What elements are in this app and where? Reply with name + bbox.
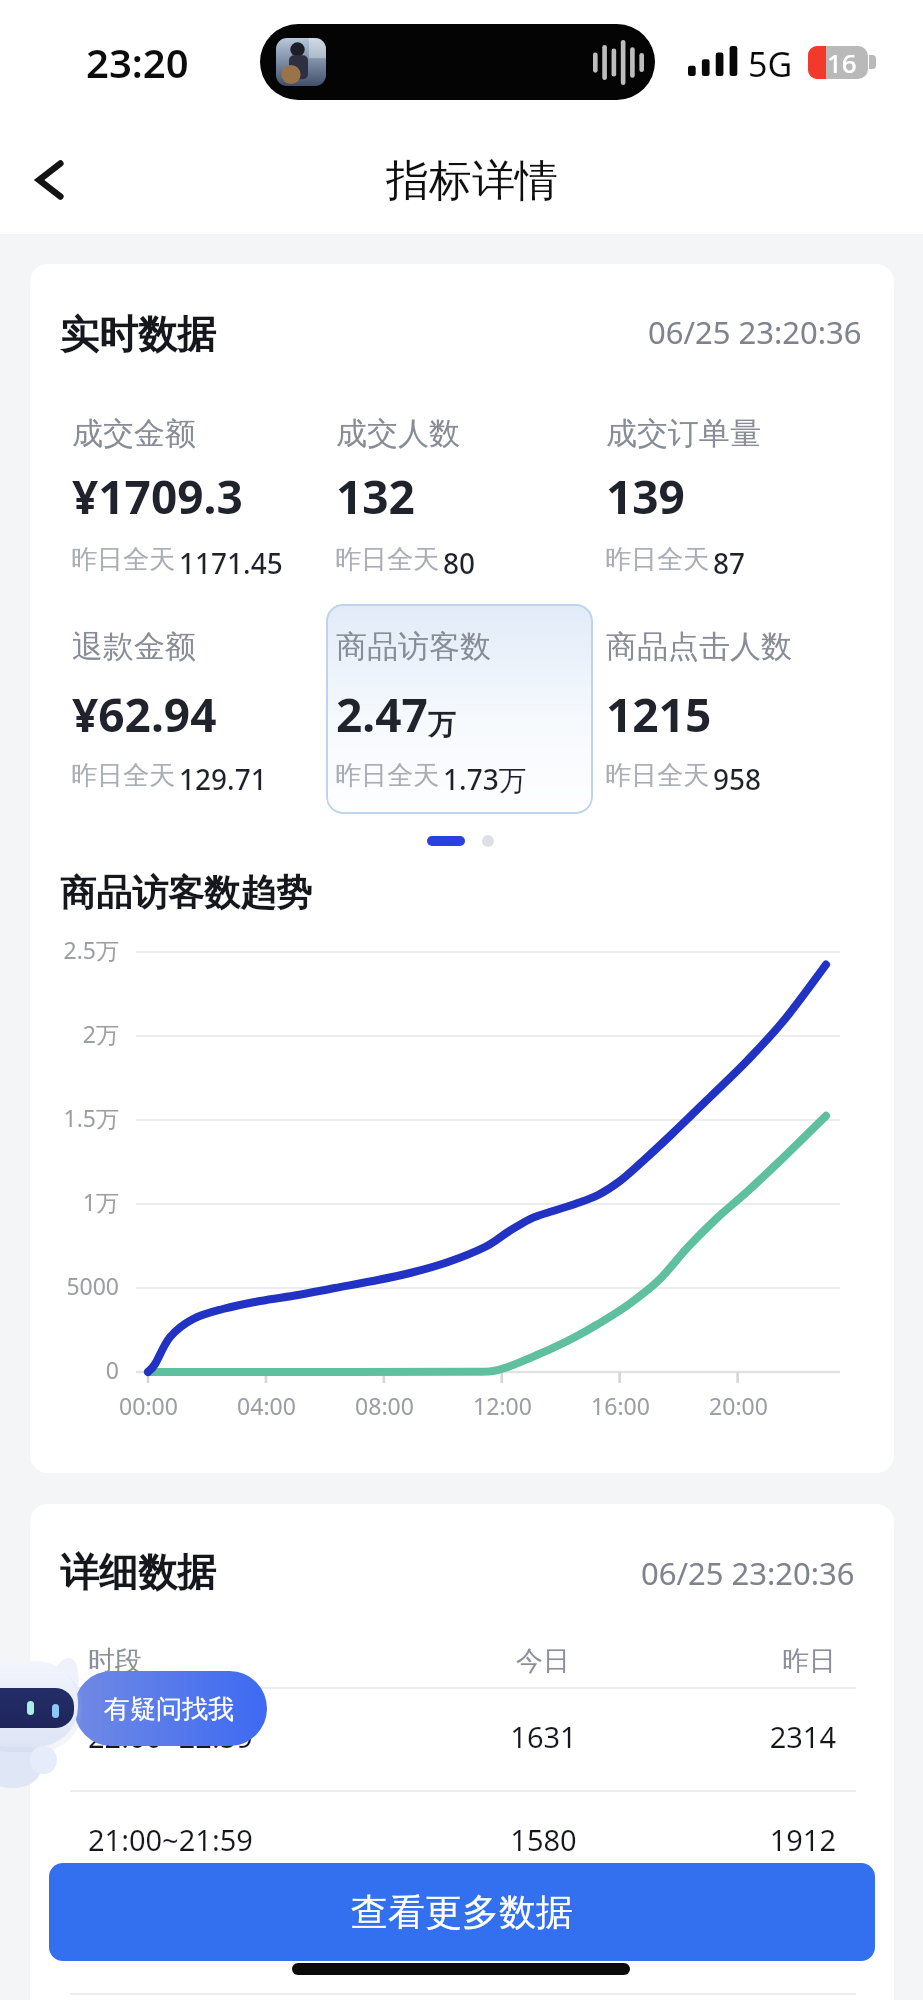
staticText: 2314 bbox=[769, 1717, 836, 1756]
staticText: 指标详情 bbox=[386, 154, 558, 208]
staticText: 139 bbox=[606, 465, 685, 528]
staticText: 实时数据 bbox=[60, 310, 216, 359]
staticText: 2万 bbox=[82, 1018, 119, 1049]
staticText: 昨日全天 bbox=[335, 543, 439, 576]
staticText: 06/25 23:20:36 bbox=[641, 1552, 855, 1594]
staticText: 查看更多数据 bbox=[351, 1889, 573, 1936]
staticText: 16 bbox=[827, 45, 857, 78]
button[interactable] bbox=[326, 604, 593, 814]
staticText: 2.5万 bbox=[63, 934, 119, 965]
staticText: 2.47 bbox=[336, 683, 428, 746]
staticText: 80 bbox=[443, 544, 476, 582]
button[interactable] bbox=[57, 400, 324, 610]
staticText: 5000 bbox=[66, 1270, 119, 1301]
staticText: 1446 bbox=[510, 1923, 577, 1962]
staticText: 22:00~22:59 bbox=[88, 1717, 253, 1756]
button[interactable] bbox=[57, 613, 324, 823]
staticText: 5G bbox=[748, 41, 793, 87]
button[interactable]: Back bbox=[16, 145, 86, 215]
staticText: 成交订单量 bbox=[606, 414, 761, 453]
staticText: 昨日 bbox=[782, 1644, 836, 1678]
staticText: 1万 bbox=[82, 1186, 119, 1217]
button[interactable]: AI assistant bbox=[0, 1640, 90, 1790]
button[interactable]: 查看更多数据 bbox=[49, 1863, 875, 1961]
staticText: 06/25 23:20:36 bbox=[648, 311, 862, 353]
staticText: 商品点击人数 bbox=[606, 627, 792, 666]
staticText: 退款金额 bbox=[72, 627, 196, 666]
button[interactable] bbox=[591, 613, 858, 823]
staticText: 商品访客数趋势 bbox=[60, 870, 312, 915]
staticText: 成交人数 bbox=[336, 414, 460, 453]
staticText: 00:00 bbox=[119, 1390, 178, 1421]
button[interactable] bbox=[591, 400, 858, 610]
staticText: 0 bbox=[105, 1354, 119, 1385]
staticText: 昨日全天 bbox=[335, 759, 439, 792]
staticText: 时段 bbox=[88, 1644, 142, 1678]
staticText: 12:00 bbox=[473, 1390, 532, 1421]
staticText: 129.71 bbox=[179, 760, 267, 798]
staticText: 1.5万 bbox=[63, 1102, 119, 1133]
staticText: 87 bbox=[713, 544, 746, 582]
staticText: 08:00 bbox=[355, 1390, 414, 1421]
staticText: 1580 bbox=[510, 1820, 577, 1859]
staticText: 昨日全天 bbox=[605, 759, 709, 792]
staticText: 有疑问找我 bbox=[104, 1693, 234, 1726]
staticText: 详细数据 bbox=[60, 1548, 216, 1597]
staticText: ¥62.94 bbox=[72, 683, 217, 746]
staticText: 1171.45 bbox=[179, 544, 283, 582]
staticText: 1.73万 bbox=[443, 760, 527, 798]
staticText: 1631 bbox=[510, 1717, 577, 1756]
button[interactable] bbox=[321, 400, 588, 610]
button[interactable]: Page 1 bbox=[427, 836, 465, 846]
staticText: 今日 bbox=[516, 1644, 570, 1678]
staticText: 1750 bbox=[769, 1923, 836, 1962]
staticText: ¥1709.3 bbox=[72, 465, 243, 528]
button[interactable] bbox=[70, 1697, 856, 1765]
staticText: 21:00~21:59 bbox=[88, 1820, 253, 1859]
staticText: 昨日全天 bbox=[71, 759, 175, 792]
button[interactable]: 有疑问找我 bbox=[74, 1671, 267, 1746]
button[interactable] bbox=[321, 613, 588, 823]
staticText: 昨日全天 bbox=[605, 543, 709, 576]
staticText: 04:00 bbox=[237, 1390, 296, 1421]
staticText: 20:00~20:59 bbox=[88, 1923, 253, 1962]
staticText: 23:20 bbox=[86, 35, 189, 89]
button[interactable] bbox=[70, 1903, 856, 1971]
staticText: 958 bbox=[713, 760, 762, 798]
staticText: 万 bbox=[428, 707, 456, 742]
staticText: 成交金额 bbox=[72, 414, 196, 453]
staticText: 商品访客数 bbox=[336, 627, 491, 666]
staticText: 16:00 bbox=[591, 1390, 650, 1421]
button[interactable]: Page 2 bbox=[482, 835, 494, 847]
staticText: 20:00 bbox=[709, 1390, 768, 1421]
staticText: 132 bbox=[336, 465, 415, 528]
staticText: 1912 bbox=[769, 1820, 836, 1859]
staticText: 1215 bbox=[606, 683, 712, 746]
button[interactable] bbox=[70, 1800, 856, 1868]
staticText: 昨日全天 bbox=[71, 543, 175, 576]
